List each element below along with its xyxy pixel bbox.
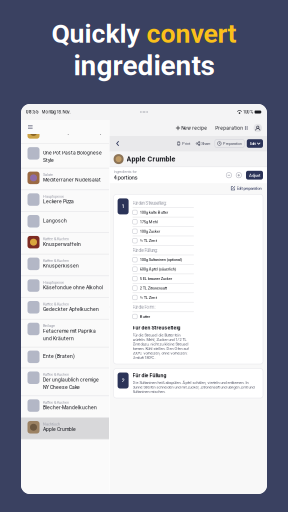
button[interactable]: Adjust [246,171,263,180]
button[interactable]: Kaffee & Kuchen [21,396,109,418]
staticText: Share [201,141,210,146]
staticText: Fetacreme mit Paprika und Kräutern [43,328,96,341]
button[interactable]: Edit preparation [229,185,263,192]
staticText: Für die Füllung: [133,248,158,253]
staticText: Ingredients for [114,169,137,174]
staticText: Für die Füllung [133,372,167,378]
staticText: Gedeckter Apfelkuchen [43,306,99,312]
staticText: 600g Äpfel (säuerlich) [140,267,176,271]
staticText: 2 [122,377,125,384]
button[interactable]: Decrease portions [226,172,232,178]
staticText: 4 portions [114,174,138,181]
staticText: Ente (Braten) [43,353,75,359]
staticText: Für die Form: [133,305,156,310]
staticText: 175g Mehl [140,219,158,224]
staticText: Edit [250,141,256,146]
staticText: Blecher-Mandelkuchen [43,405,97,411]
staticText: Hauptspeise [43,194,64,199]
staticText: Preparation [215,125,243,131]
staticText: 08:55 [26,109,39,115]
staticText: 1 [122,203,125,210]
staticText: Salate [43,172,53,177]
staticText: Preparation [223,141,242,146]
staticText: ½ TL Zimt [140,295,157,300]
staticText: 2 TL Zitronensaft [140,286,167,290]
staticText: Print [182,141,190,146]
staticText: Apple Crumble [43,426,76,432]
staticText: Mediterraner Nudelsalat [43,177,101,183]
staticText: 100g Sultaninen (optional) [140,257,182,262]
staticText: ½ TL Zimt [140,238,157,243]
staticText: 100 % [243,109,253,115]
staticText: Quickly [51,18,146,49]
button[interactable]: Salate [21,168,109,190]
button[interactable]: Ente (Braten) [21,347,109,368]
button[interactable]: Back [114,138,122,149]
staticText: Für den Streuselteig [133,325,181,331]
button[interactable]: New recipe [174,124,209,132]
staticText: Käsefondue ohne Alkohol [43,285,103,291]
staticText: Die Sultaninen heiß abspülen. Äpfel schä… [133,380,255,394]
button[interactable]: Preparation [213,124,250,132]
staticText: Langosch [43,218,67,224]
button[interactable]: Kaffee & Kuchen [21,368,109,396]
staticText: 100g Zucker [140,229,160,234]
staticText: Adjust [249,173,260,178]
button[interactable]: Print [175,140,191,147]
staticText: Knusperwaffeln [43,241,81,247]
button[interactable]: Kaffee & Kuchen [21,254,109,276]
staticText: Butter [140,314,150,319]
button[interactable]: Nachtisch [21,418,109,439]
button[interactable]: Plätzchen (Weihnachten) [21,123,109,144]
staticText: Apple Crumble [127,155,176,163]
staticText: Leckere Pizza [43,199,74,205]
button[interactable]: Preparation [215,139,244,147]
staticText: Nachtisch [43,422,60,426]
staticText: Kaffee & Kuchen [43,372,69,377]
staticText: One Pot Pasta Bolognese Style [43,150,102,163]
staticText: 5 EL brauner Zucker [140,276,172,281]
staticText: Kaffee & Kuchen [43,400,69,405]
button[interactable]: Edit [247,139,263,148]
staticText: Kaffee & Kuchen [43,258,69,263]
staticText: Plätzchen (Weihnachten) [43,129,102,135]
staticText: Beilage [43,323,55,328]
staticText: 100g kalte Butter [140,210,168,215]
staticText: Für den Streuselteig: [133,201,167,206]
staticText: Edit preparation [236,186,261,191]
button[interactable]: Hauptspeise [21,276,109,298]
staticText: Für die Streusel die Butter fein würfeln… [133,333,189,360]
button[interactable]: Kaffee & Kuchen [21,298,109,319]
staticText: Hauptspeise [43,280,64,285]
staticText: Kaffee & Kuchen [43,302,69,306]
button[interactable]: Langosch [21,212,109,233]
staticText: Montag 18. Nov. [41,109,70,115]
button[interactable]: Increase portions [236,172,241,178]
staticText: New recipe [181,125,207,131]
button[interactable]: Hauptspeise [21,190,109,212]
staticText: Kaffee & Kuchen [43,237,69,241]
button[interactable]: Kaffee & Kuchen [21,233,109,254]
button[interactable]: Sidebar [26,123,35,131]
staticText: convert [146,18,236,49]
button[interactable]: One Pot Pasta Bolognese Style [21,144,109,168]
button[interactable]: Beilage [21,319,109,347]
staticText: Knusperkissen [43,263,79,269]
button[interactable]: Share [194,140,212,147]
button[interactable]: Account [254,124,262,132]
staticText: Der unglaublich cremige NY Cheese Cake [43,377,99,390]
staticText: ingredients [73,49,214,82]
